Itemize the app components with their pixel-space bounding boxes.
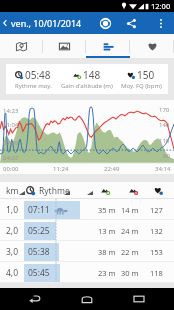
- staticText: 22:49: [104, 165, 120, 173]
- staticText: 34:14: [155, 165, 171, 173]
- staticText: Gain d'altitude (m): [61, 82, 113, 90]
- button[interactable]: Map: [0, 34, 43, 58]
- staticText: 153: [150, 247, 163, 257]
- staticText: 23 m: [98, 268, 116, 278]
- staticText: 14 m: [121, 205, 139, 215]
- staticText: ven., 10/01/2014: [11, 17, 82, 29]
- staticText: 127: [150, 205, 163, 215]
- staticText: km: [6, 185, 19, 197]
- button[interactable]: Heart rate: [130, 34, 174, 58]
- staticText: 14:23: [3, 107, 19, 115]
- staticText: 38 m: [98, 247, 116, 257]
- staticText: 170: [159, 106, 170, 114]
- button[interactable]: Charts: [86, 34, 130, 58]
- button[interactable]: 05:48: [6, 64, 60, 94]
- staticText: 11:04: [3, 121, 19, 129]
- button[interactable]: Share: [121, 12, 142, 34]
- staticText: 140: [159, 121, 170, 129]
- staticText: 22 m: [121, 247, 139, 257]
- staticText: 05:45: [28, 267, 50, 279]
- staticText: 110: [159, 137, 170, 145]
- staticText: Rythme moy.: [15, 82, 52, 90]
- staticText: 13 m: [98, 226, 116, 236]
- staticText: 04:27: [3, 154, 19, 162]
- button[interactable]: 4,0: [0, 262, 174, 283]
- button[interactable]: More options: [150, 12, 171, 34]
- button[interactable]: Back: [0, 12, 10, 34]
- staticText: 80: [163, 152, 170, 160]
- staticText: 12:00: [151, 1, 171, 11]
- staticText: 4,0: [6, 267, 19, 279]
- button[interactable]: Home: [70, 288, 104, 310]
- staticText: 35 m: [98, 205, 116, 215]
- button[interactable]: Recent apps: [122, 288, 156, 310]
- button[interactable]: 148: [60, 64, 114, 94]
- staticText: 11:24: [53, 165, 69, 173]
- button[interactable]: km: [0, 182, 174, 199]
- staticText: 1,0: [6, 204, 19, 216]
- button[interactable]: Sync: [95, 12, 116, 34]
- staticText: 00:00: [3, 165, 19, 173]
- button[interactable]: 3,0: [0, 241, 174, 262]
- staticText: 05:48: [25, 68, 51, 82]
- staticText: 05:25: [28, 225, 50, 237]
- staticText: 24 m: [121, 226, 139, 236]
- staticText: 07:11: [28, 204, 50, 216]
- staticText: 07:46: [3, 139, 19, 147]
- button[interactable]: 150: [114, 64, 168, 94]
- staticText: Moy. FQ (bpm): [121, 82, 162, 90]
- staticText: 118: [150, 268, 163, 278]
- staticText: 148: [83, 68, 101, 82]
- button[interactable]: Photos: [43, 34, 86, 58]
- staticText: 3,0: [6, 246, 19, 258]
- button[interactable]: Back: [18, 288, 52, 310]
- staticText: 150: [137, 68, 155, 82]
- staticText: 132: [150, 226, 163, 236]
- button[interactable]: 1,0: [0, 199, 174, 220]
- button[interactable]: 2,0: [0, 220, 174, 241]
- staticText: 2,0: [6, 225, 19, 237]
- staticText: 05:38: [28, 246, 50, 258]
- staticText: Rythme: [39, 185, 70, 197]
- staticText: 30 m: [121, 268, 139, 278]
